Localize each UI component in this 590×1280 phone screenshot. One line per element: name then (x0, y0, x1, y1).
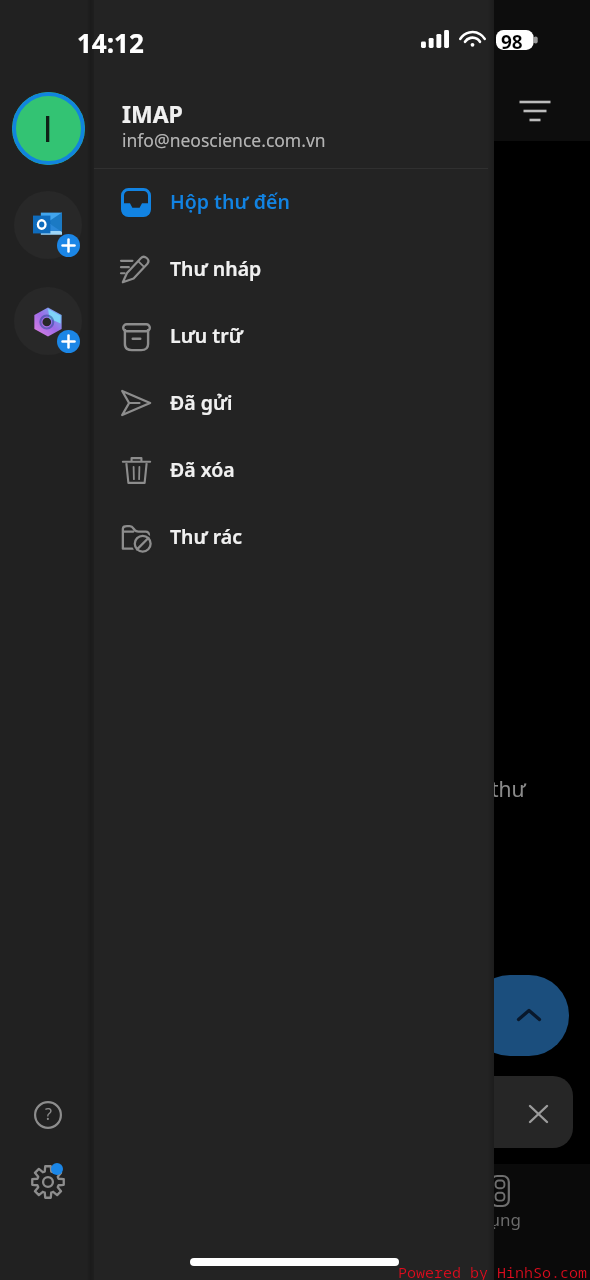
staticText: ? (45, 1103, 52, 1125)
button[interactable]: Add Outlook account (14, 191, 82, 259)
button[interactable]: Đã xóa (94, 436, 494, 503)
staticText: Thư nháp (170, 255, 262, 282)
button[interactable]: Help (19, 1086, 77, 1144)
button[interactable]: Account IMAP (12, 92, 85, 165)
staticText: dụng (479, 1208, 521, 1231)
button[interactable]: dụng (462, 1176, 538, 1231)
staticText: 98 (501, 29, 523, 55)
button[interactable]: Thư rác (94, 503, 494, 570)
staticText: Đã gửi (170, 389, 233, 416)
staticText: Đã xóa (170, 456, 235, 483)
button[interactable]: Settings (19, 1153, 77, 1211)
staticText: thư (491, 775, 526, 804)
button[interactable]: Add Microsoft 365 account (14, 287, 82, 355)
button[interactable]: Hộp thư đến (94, 168, 494, 235)
button[interactable]: Filter (509, 86, 561, 138)
button[interactable]: Đã gửi (94, 369, 494, 436)
button[interactable]: Close (470, 1076, 573, 1148)
button[interactable]: Scroll to top (470, 975, 569, 1056)
staticText: Hộp thư đến (170, 188, 290, 215)
staticText: Thư rác (170, 523, 243, 550)
staticText: IMAP (122, 98, 183, 129)
staticText: Lưu trữ (170, 322, 243, 349)
staticText: info@neoscience.com.vn (122, 128, 326, 152)
button[interactable]: Thư nháp (94, 235, 494, 302)
button[interactable]: Lưu trữ (94, 302, 494, 369)
staticText: Powered by HinhSo.com (398, 1262, 588, 1280)
staticText: 14:12 (77, 25, 144, 60)
